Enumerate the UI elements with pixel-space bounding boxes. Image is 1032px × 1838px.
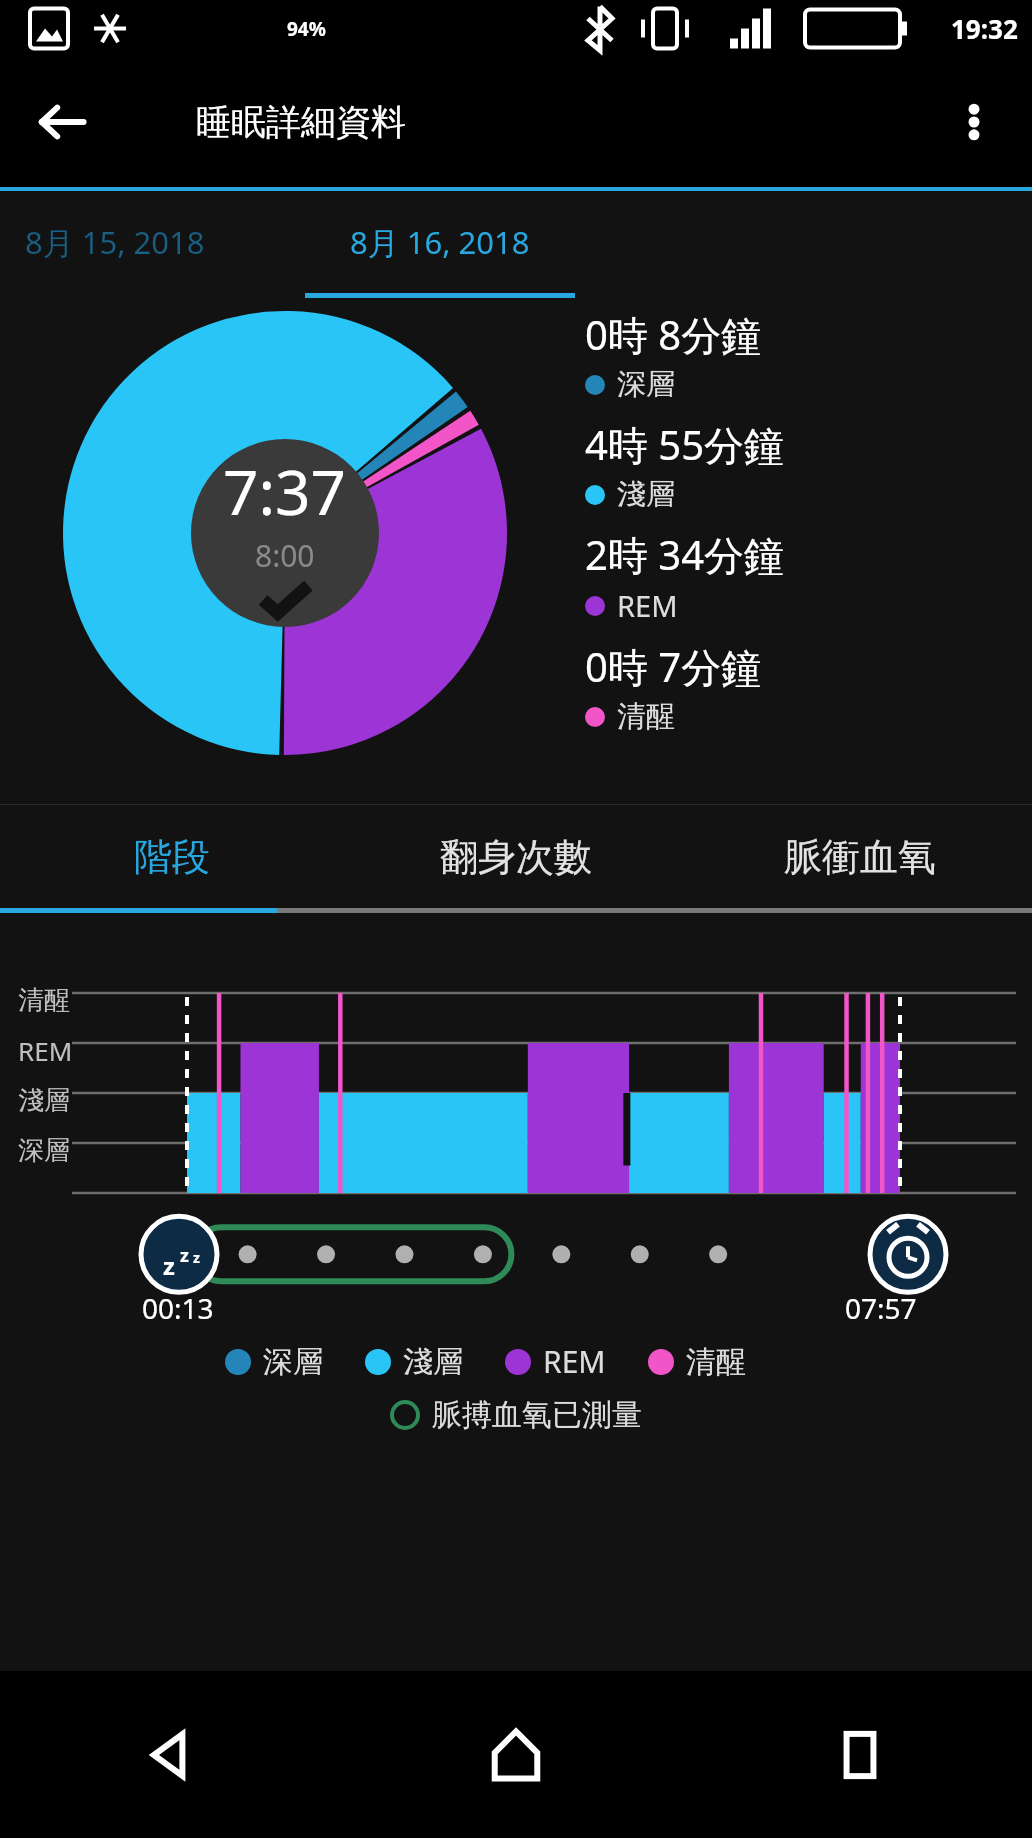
staticText: z xyxy=(163,1249,175,1282)
staticText: 07:57 xyxy=(845,1289,917,1327)
button[interactable]: 8月 15, 2018 xyxy=(0,191,265,298)
staticText: 00:13 xyxy=(142,1289,214,1327)
button[interactable]: Back xyxy=(24,84,100,160)
staticText: 94% xyxy=(287,16,326,42)
staticText: 8月 15, 2018 xyxy=(25,221,205,263)
staticText: 清醒 xyxy=(686,1343,746,1381)
button[interactable]: 翻身次數 xyxy=(344,805,688,908)
button[interactable]: 清醒 xyxy=(648,1343,746,1381)
staticText: 19:32 xyxy=(951,11,1018,46)
staticText: 8:00 xyxy=(255,535,315,576)
button[interactable]: Back xyxy=(0,1671,344,1838)
staticText: 深層 xyxy=(617,366,675,403)
button[interactable]: More options xyxy=(936,84,1012,160)
staticText: 淺層 xyxy=(403,1343,463,1381)
staticText: 脈衝血氧 xyxy=(784,833,936,881)
button[interactable]: 深層 xyxy=(225,1343,323,1381)
staticText: 階段 xyxy=(134,833,210,881)
staticText: 淺層 xyxy=(617,476,675,513)
staticText: REM xyxy=(617,586,678,625)
staticText: 深層 xyxy=(18,1134,70,1167)
staticText: 淺層 xyxy=(18,1084,70,1117)
button[interactable]: REM xyxy=(505,1341,606,1382)
button[interactable]: 階段 xyxy=(0,805,344,908)
button[interactable]: 脈衝血氧 xyxy=(688,805,1032,908)
button[interactable]: 脈搏血氧已測量 xyxy=(390,1396,642,1434)
staticText: 清醒 xyxy=(18,984,70,1017)
staticText: z xyxy=(180,1243,189,1268)
staticText: 翻身次數 xyxy=(440,833,592,881)
staticText: 4時 55分鐘 xyxy=(585,417,785,472)
button[interactable]: Home xyxy=(344,1671,688,1838)
staticText: 0時 8分鐘 xyxy=(585,307,762,362)
button[interactable]: 8月 16, 2018 xyxy=(305,191,575,298)
button[interactable]: 淺層 xyxy=(365,1343,463,1381)
button[interactable]: Recent apps xyxy=(688,1671,1032,1838)
staticText: 睡眠詳細資料 xyxy=(196,100,406,144)
staticText: REM xyxy=(543,1341,606,1382)
staticText: 7:37 xyxy=(223,449,347,533)
staticText: 深層 xyxy=(263,1343,323,1381)
staticText: 0時 7分鐘 xyxy=(585,639,762,694)
staticText: z xyxy=(193,1248,200,1267)
staticText: 脈搏血氧已測量 xyxy=(432,1396,642,1434)
staticText: REM xyxy=(18,1033,73,1068)
staticText: 清醒 xyxy=(617,698,675,735)
staticText: 8月 16, 2018 xyxy=(350,221,530,263)
staticText: 2時 34分鐘 xyxy=(585,527,785,582)
